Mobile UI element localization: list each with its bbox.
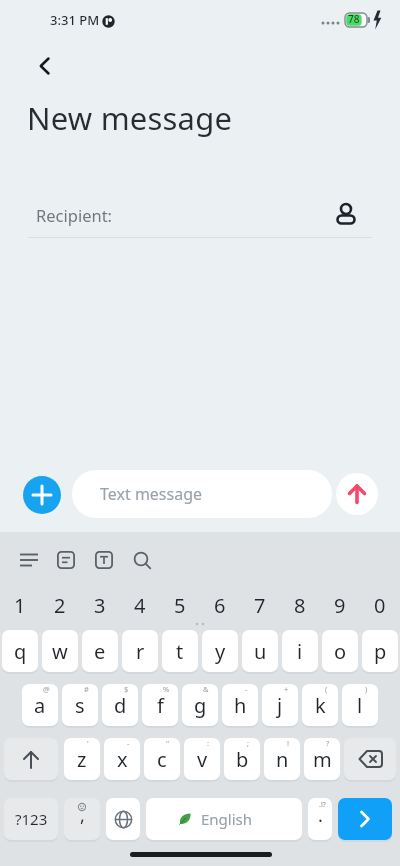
button[interactable]: o [322,630,358,672]
staticText: i [297,638,303,665]
button[interactable]: - [104,738,140,780]
button[interactable]: $ [102,684,138,726]
button[interactable]: , [64,798,100,840]
button[interactable]: y [202,630,238,672]
button[interactable] [84,540,124,580]
button[interactable]: ) [342,684,378,726]
button[interactable] [23,476,61,514]
button[interactable]: t [162,630,198,672]
staticText: ; [247,738,250,748]
button[interactable]: - [222,684,258,726]
staticText: % [163,684,170,694]
button[interactable] [344,738,396,780]
staticText: m [313,746,332,773]
button[interactable]: ; [224,738,260,780]
button[interactable]: Text message [72,470,332,518]
staticText: - [245,684,248,694]
staticText: s [75,692,85,719]
staticText: & [203,684,209,694]
button[interactable]: u [242,630,278,672]
button[interactable]: q [2,630,38,672]
button[interactable]: r [122,630,158,672]
button[interactable]: 4 [120,588,160,622]
staticText: 7 [254,592,266,619]
button[interactable] [22,46,66,86]
button[interactable]: @ [22,684,58,726]
staticText: b [236,746,249,773]
staticText: l [357,692,363,719]
staticText: 8 [294,592,306,619]
button[interactable]: w [42,630,78,672]
button[interactable] [46,540,86,580]
staticText: + [284,684,289,694]
staticText: 0 [374,592,386,619]
button[interactable]: English [146,798,302,840]
staticText: u [254,638,267,665]
button[interactable]: & [182,684,218,726]
staticText: d [114,692,127,719]
button[interactable]: % [142,684,178,726]
button[interactable]: " [144,738,180,780]
button[interactable]: 6 [200,588,240,622]
staticText: ?123 [15,809,48,829]
staticText: .!? [319,800,326,810]
button[interactable] [336,473,378,515]
button[interactable] [4,738,58,780]
staticText: v [197,746,208,773]
staticText: : [207,738,210,748]
button[interactable]: # [62,684,98,726]
staticText: p [374,638,387,665]
button[interactable]: ?123 [4,798,58,840]
staticText: 1 [14,592,26,619]
button[interactable]: 1 [0,588,40,622]
button[interactable]: 8 [280,588,320,622]
button[interactable]: 0 [360,588,400,622]
staticText: 78 [348,12,360,26]
staticText: o [334,638,347,665]
staticText: n [276,746,289,773]
staticText: ! [287,738,290,748]
button[interactable]: ? [304,738,340,780]
button[interactable]: e [82,630,118,672]
button[interactable]: ( [302,684,338,726]
button[interactable]: ! [264,738,300,780]
staticText: ' [87,738,89,748]
staticText: 3:31 PM [50,11,100,29]
staticText: 4 [134,592,146,619]
staticText: k [315,692,326,719]
staticText: e [94,638,106,665]
staticText: x [117,746,128,773]
staticText: r [136,638,145,665]
staticText: Text message [100,483,203,505]
button[interactable]: . [308,798,332,840]
button[interactable] [122,540,162,580]
staticText: 9 [334,592,346,619]
staticText: t [176,638,184,665]
staticText: New message [27,97,233,139]
button[interactable]: 7 [240,588,280,622]
staticText: f [157,692,164,719]
button[interactable] [106,798,140,840]
staticText: 3 [94,592,106,619]
button[interactable] [9,540,49,580]
button[interactable]: 3 [80,588,120,622]
staticText: y [215,638,226,665]
button[interactable]: Recipient: [0,190,400,238]
button[interactable]: ' [64,738,100,780]
staticText: j [277,692,283,719]
button[interactable]: p [362,630,398,672]
button[interactable]: : [184,738,220,780]
button[interactable] [338,798,392,840]
button[interactable]: i [282,630,318,672]
staticText: $ [124,684,129,694]
button[interactable]: 5 [160,588,200,622]
button[interactable]: 9 [320,588,360,622]
button[interactable]: + [262,684,298,726]
staticText: q [14,638,27,665]
staticText: 2 [54,592,66,619]
staticText: ) [365,684,368,694]
staticText: @ [43,684,50,694]
staticText: , [80,803,85,828]
button[interactable]: 2 [40,588,80,622]
staticText: # [84,684,89,694]
